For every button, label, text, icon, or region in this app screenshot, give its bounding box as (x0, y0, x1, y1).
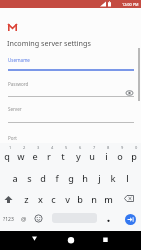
staticText: w (17, 150, 25, 162)
staticText: 0 (135, 145, 138, 150)
button[interactable] (34, 214, 43, 223)
button[interactable] (125, 89, 134, 97)
button[interactable]: Username (0, 56, 141, 72)
button[interactable]: v (60, 189, 74, 209)
staticText: p (131, 150, 137, 162)
staticText: 7 (93, 145, 96, 150)
button[interactable]: Port (0, 134, 141, 144)
button[interactable]: e (28, 146, 42, 166)
button[interactable] (124, 195, 134, 202)
staticText: 1 (9, 145, 12, 150)
staticText: c (51, 193, 56, 205)
button[interactable]: i (99, 146, 113, 166)
staticText: Port (8, 135, 17, 141)
button[interactable]: g (64, 168, 78, 188)
button[interactable]: Password (0, 80, 141, 97)
button[interactable]: u (85, 146, 99, 166)
button[interactable] (47, 231, 94, 250)
staticText: 8 (107, 145, 110, 150)
staticText: s (27, 172, 32, 184)
staticText: r (47, 150, 51, 162)
staticText: y (76, 150, 81, 162)
staticText: 5 (65, 145, 68, 150)
button[interactable]: c (46, 189, 60, 209)
staticText: 4 (51, 145, 54, 150)
staticText: i (105, 150, 108, 162)
staticText: 6 (79, 145, 82, 150)
button[interactable]: q (0, 146, 14, 166)
staticText: b (77, 193, 83, 205)
button[interactable]: d (36, 168, 50, 188)
staticText: @ (21, 215, 27, 223)
staticText: 9 (121, 145, 124, 150)
staticText: a (12, 172, 18, 184)
button[interactable]: r (42, 146, 56, 166)
staticText: 12:00 PM (122, 2, 139, 7)
button[interactable]: j (92, 168, 106, 188)
button[interactable]: @ (17, 209, 30, 229)
button[interactable]: x (33, 189, 47, 209)
staticText: g (68, 172, 74, 184)
button[interactable] (0, 231, 47, 250)
button[interactable] (102, 209, 114, 229)
staticText: x (38, 193, 43, 205)
button[interactable]: o (113, 146, 127, 166)
staticText: q (4, 150, 10, 162)
button[interactable]: f (50, 168, 64, 188)
button[interactable]: p (127, 146, 141, 166)
button[interactable]: z (19, 189, 33, 209)
button[interactable] (4, 195, 13, 204)
staticText: t (61, 150, 65, 162)
staticText: e (32, 150, 38, 162)
staticText: Incoming server settings (7, 38, 91, 48)
button[interactable]: s (22, 168, 36, 188)
staticText: l (126, 172, 129, 184)
button[interactable]: k (106, 168, 120, 188)
staticText: Server (8, 106, 22, 112)
button[interactable]: n (87, 189, 101, 209)
button[interactable]: ?123 (0, 209, 17, 229)
staticText: o (117, 150, 123, 162)
staticText: d (40, 172, 46, 184)
staticText: ?123 (3, 216, 14, 223)
button[interactable]: a (8, 168, 22, 188)
staticText: 2 (23, 145, 26, 150)
button[interactable]: Server (0, 105, 141, 122)
staticText: j (98, 172, 101, 184)
button[interactable]: b (73, 189, 87, 209)
staticText: k (110, 172, 116, 184)
staticText: m (104, 193, 113, 205)
staticText: f (55, 172, 59, 184)
staticText: Username (8, 57, 30, 63)
button[interactable]: l (120, 168, 134, 188)
button[interactable]: m (101, 189, 115, 209)
staticText: h (82, 172, 88, 184)
staticText: u (89, 150, 95, 162)
button[interactable]: h (78, 168, 92, 188)
button[interactable]: y (71, 146, 85, 166)
button[interactable] (125, 214, 136, 225)
button[interactable]: w (14, 146, 28, 166)
staticText: Password (8, 81, 29, 87)
button[interactable] (94, 231, 141, 250)
staticText: 3 (37, 145, 40, 150)
staticText: n (91, 193, 97, 205)
staticText: z (24, 193, 29, 205)
button[interactable]: t (56, 146, 70, 166)
staticText: v (65, 193, 70, 205)
